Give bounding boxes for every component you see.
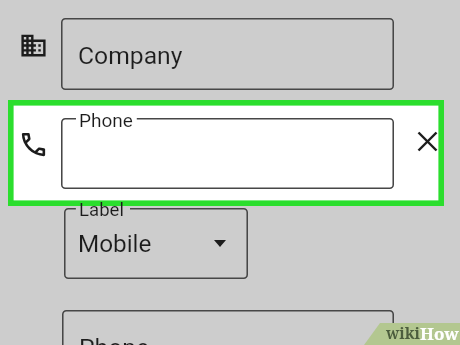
staticText: Label bbox=[79, 199, 124, 221]
other: Company bbox=[19, 31, 48, 60]
other: Phone bbox=[18, 129, 49, 160]
button[interactable]: Phone bbox=[61, 118, 394, 189]
button[interactable]: Phone bbox=[62, 310, 394, 345]
button[interactable]: Company bbox=[61, 18, 394, 90]
button[interactable]: Label bbox=[64, 208, 248, 279]
button[interactable]: Clear phone number bbox=[416, 130, 439, 153]
staticText: Phone bbox=[79, 333, 149, 345]
staticText: How bbox=[420, 322, 459, 344]
staticText: Company bbox=[78, 41, 183, 70]
staticText: Phone bbox=[79, 109, 133, 131]
staticText: Mobile bbox=[78, 229, 152, 257]
staticText: wiki bbox=[386, 322, 421, 343]
